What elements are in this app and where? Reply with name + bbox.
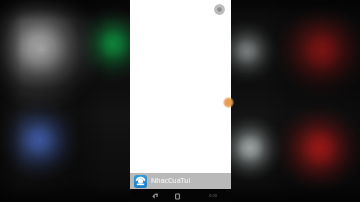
button[interactable]: Back — [150, 191, 160, 201]
button[interactable]: Home — [172, 191, 182, 201]
staticText: 0:00 — [209, 193, 217, 198]
staticText: NhacCuaTui — [151, 176, 191, 186]
button[interactable]: Close — [214, 4, 225, 15]
button[interactable]: NhacCuaTui — [130, 173, 231, 189]
